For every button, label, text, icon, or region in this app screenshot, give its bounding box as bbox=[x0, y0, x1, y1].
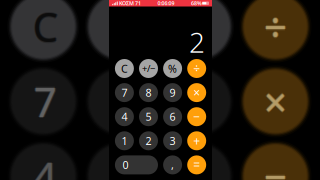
staticText: − bbox=[264, 151, 287, 180]
staticText: 4 bbox=[33, 150, 56, 180]
staticText: − bbox=[264, 148, 287, 180]
button[interactable]: 8 bbox=[139, 83, 158, 102]
staticText: 4 bbox=[35, 150, 58, 180]
staticText: 9 bbox=[170, 85, 176, 100]
staticText: C bbox=[33, 0, 58, 53]
staticText: 2 bbox=[189, 23, 205, 61]
staticText: 7 bbox=[34, 74, 57, 127]
staticText: − bbox=[265, 150, 288, 180]
staticText: 7 bbox=[35, 75, 58, 128]
staticText: × bbox=[264, 76, 287, 129]
staticText: C bbox=[121, 61, 128, 76]
staticText: × bbox=[265, 75, 288, 128]
staticText: 68% bbox=[191, 0, 202, 7]
button[interactable]: decimal point bbox=[163, 155, 182, 174]
button[interactable]: 9 bbox=[163, 83, 182, 102]
staticText: 4 bbox=[34, 148, 57, 180]
staticText: 7 bbox=[121, 85, 127, 100]
button[interactable]: minus bbox=[187, 107, 206, 126]
button[interactable]: multiply bbox=[187, 83, 206, 102]
staticText: 8 bbox=[145, 85, 151, 100]
staticText: 7 bbox=[34, 76, 57, 129]
staticText: , bbox=[171, 158, 174, 172]
staticText: KOΣM 71 bbox=[118, 0, 141, 7]
staticText: 4 bbox=[121, 110, 127, 124]
staticText: C bbox=[32, 0, 57, 53]
button[interactable]: 3 bbox=[163, 131, 182, 150]
button[interactable]: divide bbox=[187, 59, 206, 78]
button[interactable]: plus minus bbox=[139, 59, 158, 78]
staticText: 6 bbox=[170, 110, 176, 124]
staticText: C bbox=[34, 0, 59, 53]
button[interactable]: 2 bbox=[139, 131, 158, 150]
staticText: ÷ bbox=[193, 60, 200, 76]
staticText: C bbox=[33, 0, 58, 52]
staticText: 2 bbox=[145, 134, 151, 148]
staticText: − bbox=[263, 150, 286, 180]
staticText: % bbox=[168, 61, 177, 76]
staticText: 7 bbox=[34, 75, 57, 128]
staticText: 4 bbox=[34, 151, 57, 180]
staticText: = bbox=[193, 157, 200, 173]
staticText: − bbox=[264, 150, 287, 180]
button[interactable]: 7 bbox=[115, 83, 134, 102]
staticText: 7 bbox=[33, 75, 56, 128]
staticText: +/− bbox=[142, 62, 155, 75]
staticText: − bbox=[193, 109, 200, 125]
staticText: ÷ bbox=[264, 0, 287, 53]
staticText: 0:06:09 bbox=[157, 0, 174, 7]
staticText: × bbox=[263, 75, 286, 128]
button[interactable]: % bbox=[163, 59, 182, 78]
staticText: 0 bbox=[122, 158, 128, 172]
staticText: ÷ bbox=[264, 0, 287, 52]
button[interactable]: equals bbox=[187, 155, 206, 174]
staticText: 5 bbox=[145, 110, 151, 124]
staticText: 1 bbox=[121, 134, 127, 148]
button[interactable]: 4 bbox=[115, 107, 134, 126]
button[interactable]: 0 bbox=[115, 155, 158, 174]
button[interactable]: 1 bbox=[115, 131, 134, 150]
staticText: × bbox=[264, 74, 287, 127]
staticText: ÷ bbox=[264, 1, 287, 54]
button[interactable]: plus bbox=[187, 131, 206, 150]
staticText: 3 bbox=[170, 134, 176, 148]
staticText: + bbox=[193, 133, 200, 149]
staticText: × bbox=[193, 85, 200, 100]
button[interactable]: C bbox=[115, 59, 134, 78]
staticText: × bbox=[264, 75, 287, 128]
staticText: ÷ bbox=[265, 0, 288, 53]
button[interactable]: 5 bbox=[139, 107, 158, 126]
button[interactable]: 6 bbox=[163, 107, 182, 126]
staticText: ÷ bbox=[263, 0, 286, 53]
staticText: C bbox=[33, 1, 58, 54]
staticText: 4 bbox=[34, 150, 57, 180]
